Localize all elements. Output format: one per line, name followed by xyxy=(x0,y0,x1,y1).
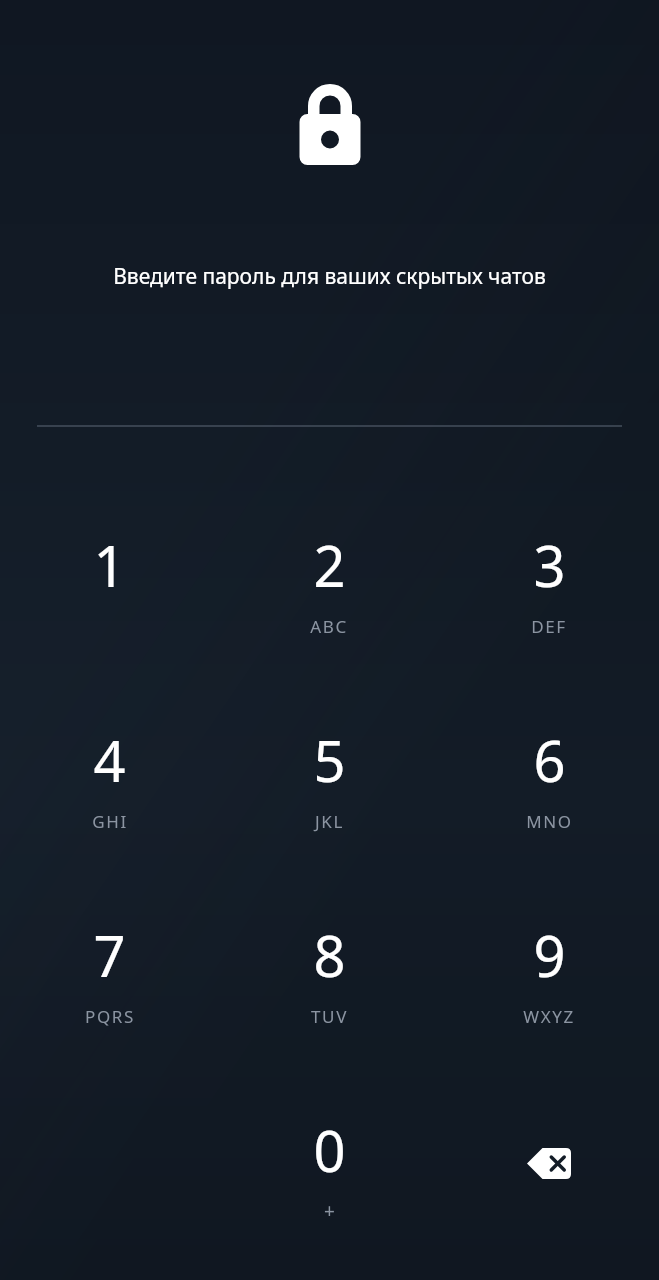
staticText: Введите пароль для ваших скрытых чатов xyxy=(113,262,546,291)
staticText: WXYZ xyxy=(523,1005,575,1028)
button[interactable]: 8 xyxy=(219,911,439,1106)
staticText: 9 xyxy=(533,917,566,993)
button[interactable]: 6 xyxy=(439,716,659,911)
button[interactable]: 9 xyxy=(439,911,659,1106)
staticText: 3 xyxy=(533,527,566,603)
staticText: JKL xyxy=(315,810,344,833)
staticText: PQRS xyxy=(85,1005,135,1028)
button[interactable]: 7 xyxy=(0,911,219,1106)
button[interactable]: 0 xyxy=(219,1106,439,1280)
staticText: 0 xyxy=(313,1112,346,1188)
staticText: ABC xyxy=(310,615,348,638)
staticText: 5 xyxy=(313,722,346,798)
button[interactable]: 4 xyxy=(0,716,219,911)
staticText: 2 xyxy=(313,527,346,603)
staticText: 1 xyxy=(93,527,126,603)
staticText: 6 xyxy=(533,722,566,798)
button[interactable]: 5 xyxy=(219,716,439,911)
staticText: GHI xyxy=(92,810,128,833)
staticText: TUV xyxy=(311,1005,348,1028)
staticText: 4 xyxy=(93,722,126,798)
button[interactable]: 3 xyxy=(439,521,659,716)
staticText: 7 xyxy=(93,917,126,993)
button[interactable]: 1 xyxy=(0,521,219,716)
staticText: 8 xyxy=(313,917,346,993)
button[interactable]: Backspace xyxy=(439,1106,659,1280)
staticText: MNO xyxy=(526,810,573,833)
staticText: DEF xyxy=(531,615,567,638)
button[interactable]: 2 xyxy=(219,521,439,716)
staticText: + xyxy=(324,1198,335,1224)
